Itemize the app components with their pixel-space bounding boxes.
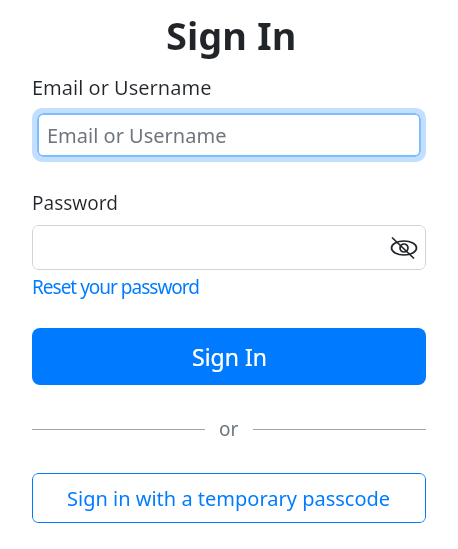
- staticText: Sign in with a temporary passcode: [67, 485, 391, 512]
- button[interactable]: Sign in with a temporary passcode: [32, 473, 426, 523]
- staticText: or: [219, 416, 239, 442]
- button[interactable]: Email or Username: [37, 113, 421, 157]
- staticText: Sign In: [166, 9, 297, 61]
- button[interactable]: [32, 225, 426, 270]
- staticText: Email or Username: [47, 122, 227, 149]
- button[interactable]: Reset your password: [32, 274, 199, 300]
- staticText: Email or Username: [32, 74, 212, 101]
- staticText: Password: [32, 190, 118, 216]
- button[interactable]: Sign In: [32, 328, 426, 385]
- staticText: Sign In: [192, 341, 267, 372]
